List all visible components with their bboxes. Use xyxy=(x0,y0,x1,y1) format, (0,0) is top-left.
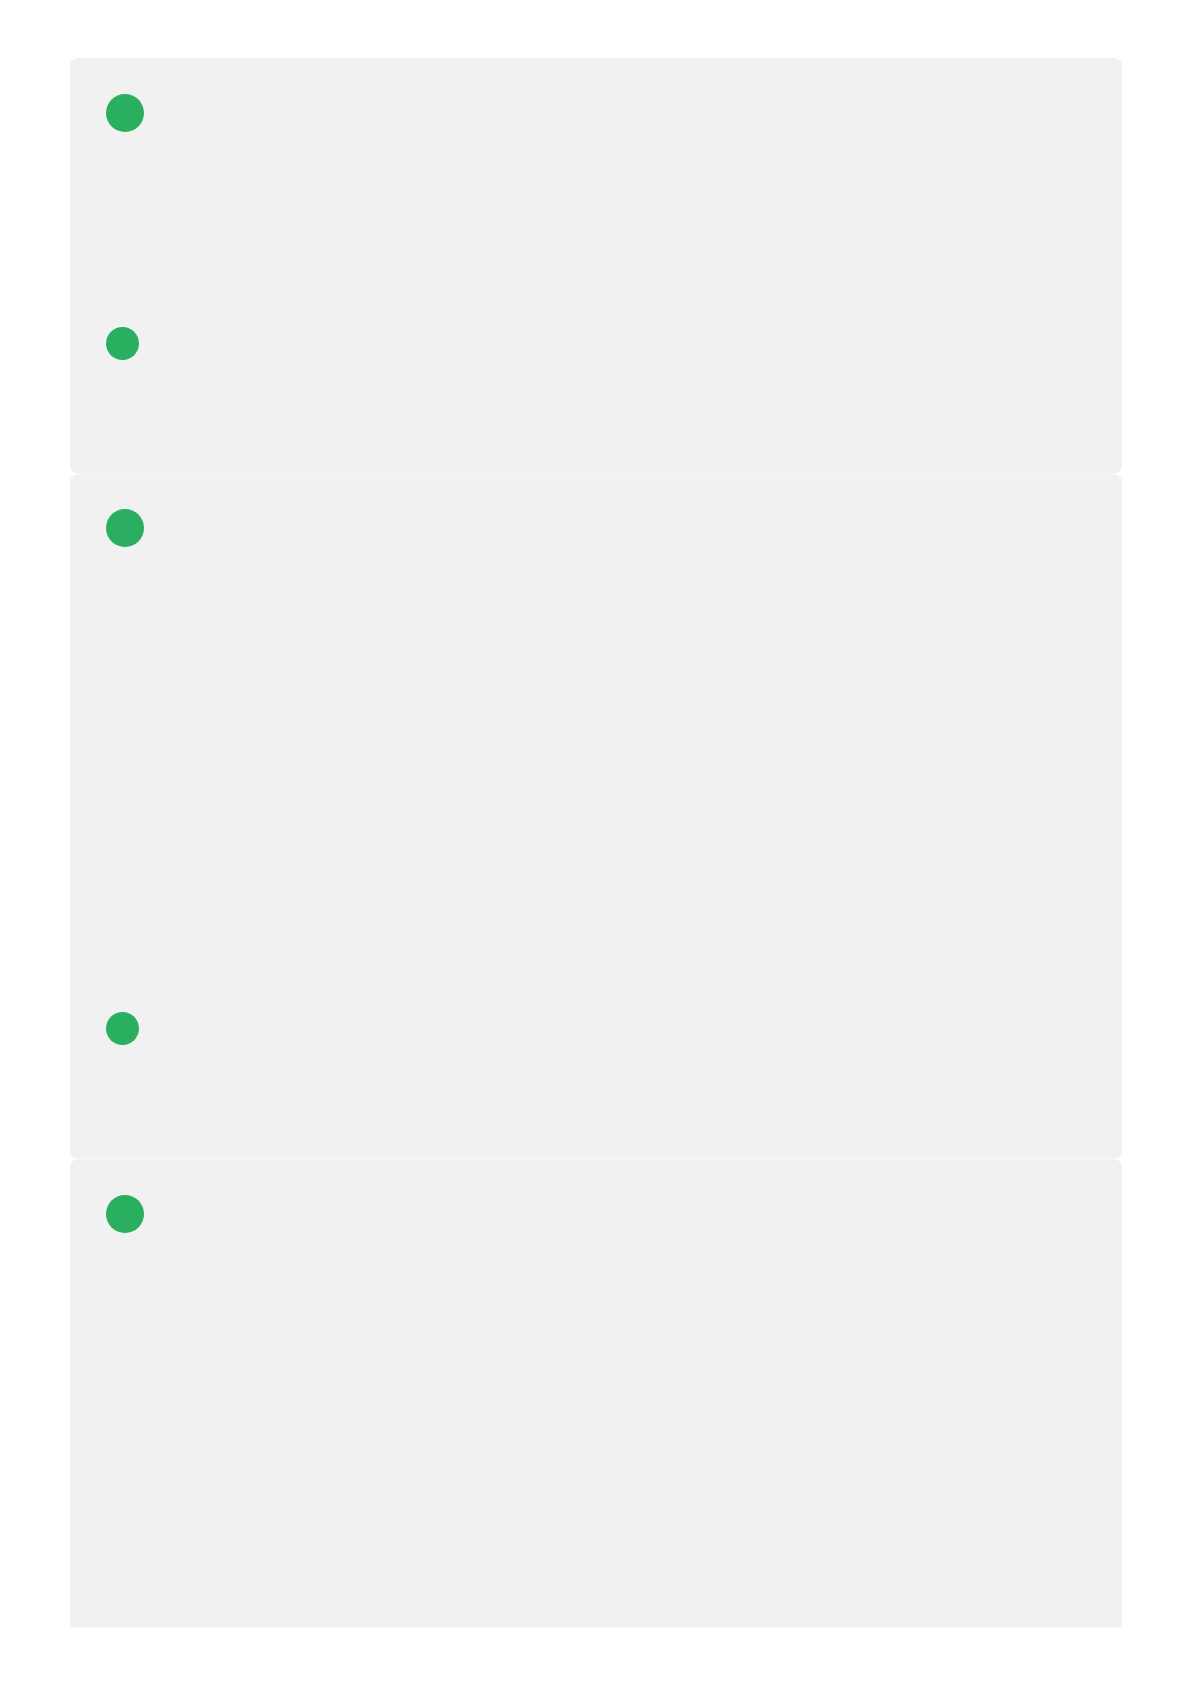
button[interactable]: Status indicator xyxy=(70,57,1122,474)
button[interactable]: Status indicator xyxy=(70,1159,1122,1628)
button[interactable]: Status indicator xyxy=(106,1012,139,1045)
button[interactable]: Status indicator xyxy=(106,94,144,132)
button[interactable]: Status indicator xyxy=(70,474,1122,1159)
button[interactable]: Status indicator xyxy=(106,1195,144,1233)
button[interactable]: Status indicator xyxy=(106,327,139,360)
button[interactable]: Status indicator xyxy=(106,509,144,547)
